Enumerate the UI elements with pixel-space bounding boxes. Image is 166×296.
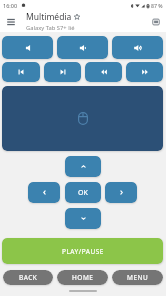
button[interactable]: PLAY/PAUSE (2, 238, 163, 264)
staticText: 16:00 (3, 2, 18, 9)
button[interactable]: Rewind (85, 62, 122, 82)
staticText: 87 % (151, 2, 163, 9)
button[interactable]: Down (65, 208, 101, 229)
button[interactable]: Forward (126, 62, 163, 82)
button[interactable]: OK (65, 182, 101, 203)
staticText: BACK (19, 273, 38, 282)
button[interactable]: HOME (57, 270, 108, 285)
button[interactable]: Previous (2, 62, 40, 82)
button[interactable]: Mute (2, 36, 53, 59)
button[interactable]: Up (65, 156, 101, 177)
button[interactable]: BACK (3, 270, 53, 285)
staticText: OK (78, 188, 88, 198)
staticText: PLAY/PAUSE (62, 247, 104, 256)
staticText: MENU (127, 273, 149, 282)
button[interactable]: Cast (149, 15, 163, 29)
button[interactable]: Menu (3, 14, 19, 30)
button[interactable]: Volume up (112, 36, 163, 59)
button[interactable]: Touchpad (2, 86, 163, 151)
button[interactable]: Right (105, 182, 137, 203)
staticText: Multimédia (26, 11, 72, 23)
button[interactable]: Next (44, 62, 81, 82)
button[interactable]: Left (28, 182, 60, 203)
staticText: Galaxy Tab S7+ lié (26, 24, 75, 32)
button[interactable]: Volume down (57, 36, 108, 59)
staticText: HOME (72, 273, 94, 282)
button[interactable]: MENU (112, 270, 163, 285)
